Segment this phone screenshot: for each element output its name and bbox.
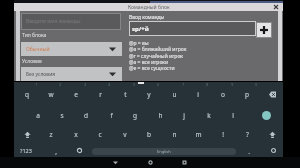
staticText: @e = все сущности bbox=[129, 65, 175, 72]
staticText: 9 bbox=[231, 82, 234, 87]
staticText: Условие bbox=[22, 58, 42, 65]
button[interactable]: Введите имя команды bbox=[21, 13, 121, 30]
button[interactable]: Close bbox=[272, 3, 280, 11]
staticText: j bbox=[183, 111, 185, 120]
staticText: ! bbox=[222, 130, 224, 139]
button[interactable]: sp/+й bbox=[129, 21, 256, 36]
staticText: @a = ближайший игрок bbox=[129, 46, 187, 53]
button[interactable]: t bbox=[114, 85, 136, 103]
button[interactable]: h bbox=[149, 106, 171, 124]
staticText: ?123 bbox=[20, 147, 32, 154]
button[interactable]: n bbox=[163, 125, 185, 143]
button[interactable]: o bbox=[212, 85, 234, 103]
staticText: Командный блок bbox=[128, 4, 170, 11]
staticText: s bbox=[60, 111, 64, 120]
staticText: ? bbox=[246, 130, 249, 139]
staticText: Введите имя команды bbox=[26, 18, 81, 25]
button[interactable]: ?123 bbox=[15, 141, 37, 159]
staticText: m bbox=[195, 130, 202, 139]
staticText: , bbox=[55, 147, 57, 156]
staticText: h bbox=[158, 111, 163, 120]
button[interactable]: New line bbox=[262, 141, 284, 159]
staticText: @a = все игроки bbox=[129, 59, 169, 66]
staticText: @r = случайный игрок bbox=[129, 53, 184, 60]
staticText: z bbox=[49, 130, 53, 139]
button[interactable]: j bbox=[173, 106, 195, 124]
staticText: e bbox=[74, 90, 78, 99]
button[interactable]: l bbox=[222, 106, 244, 124]
staticText: 7 bbox=[182, 82, 185, 87]
button[interactable]: Add command bbox=[256, 22, 272, 38]
staticText: 3 bbox=[84, 82, 87, 87]
staticText: 1 bbox=[35, 82, 38, 87]
staticText: u bbox=[172, 90, 177, 99]
button[interactable]: Backspace bbox=[261, 85, 283, 103]
staticText: i bbox=[197, 90, 199, 99]
button[interactable]: Back bbox=[109, 157, 121, 168]
staticText: English bbox=[157, 149, 171, 154]
staticText: Без условия bbox=[26, 71, 56, 78]
staticText: r bbox=[99, 90, 102, 99]
staticText: d bbox=[84, 111, 88, 120]
staticText: l bbox=[232, 111, 234, 120]
button[interactable]: w bbox=[40, 85, 62, 103]
button[interactable]: f bbox=[100, 106, 122, 124]
staticText: 8 bbox=[206, 82, 209, 87]
staticText: sp/+й bbox=[132, 25, 149, 33]
staticText: n bbox=[172, 130, 177, 139]
staticText: 5 bbox=[133, 82, 136, 87]
button[interactable]: s bbox=[51, 106, 73, 124]
button[interactable]: k bbox=[198, 106, 220, 124]
staticText: o bbox=[221, 90, 225, 99]
button[interactable]: Enter bbox=[257, 106, 275, 124]
button[interactable]: d bbox=[75, 106, 97, 124]
staticText: k bbox=[207, 111, 211, 120]
staticText: f bbox=[110, 111, 113, 120]
staticText: 0 bbox=[255, 82, 258, 87]
staticText: Ввод команды bbox=[129, 14, 165, 21]
button[interactable]: ! bbox=[212, 125, 234, 143]
staticText: c bbox=[98, 130, 102, 139]
button[interactable]: y bbox=[138, 85, 160, 103]
button[interactable]: i bbox=[187, 85, 209, 103]
button[interactable]: Обычный bbox=[21, 42, 122, 56]
staticText: y bbox=[147, 90, 151, 99]
button[interactable]: , bbox=[45, 142, 67, 160]
staticText: v bbox=[123, 130, 127, 139]
button[interactable]: Recents bbox=[178, 157, 190, 168]
staticText: . bbox=[248, 147, 250, 156]
button[interactable]: v bbox=[114, 125, 136, 143]
button[interactable]: . bbox=[238, 142, 260, 160]
button[interactable]: p bbox=[236, 85, 258, 103]
button[interactable]: g bbox=[124, 106, 146, 124]
button[interactable]: c bbox=[89, 125, 111, 143]
button[interactable]: Emoji bbox=[68, 141, 90, 159]
button[interactable]: m bbox=[187, 125, 209, 143]
staticText: t bbox=[124, 90, 127, 99]
button[interactable]: Home bbox=[144, 157, 156, 168]
staticText: p bbox=[245, 90, 249, 99]
staticText: a bbox=[36, 111, 40, 120]
button[interactable]: z bbox=[40, 125, 62, 143]
staticText: b bbox=[147, 130, 151, 139]
button[interactable]: e bbox=[65, 85, 87, 103]
button[interactable]: Shift bbox=[16, 125, 38, 143]
button[interactable]: Shift bbox=[261, 125, 283, 143]
button[interactable]: r bbox=[89, 85, 111, 103]
staticText: x bbox=[74, 130, 78, 139]
button[interactable]: u bbox=[163, 85, 185, 103]
button[interactable]: x bbox=[65, 125, 87, 143]
button[interactable]: ? bbox=[236, 125, 258, 143]
button[interactable]: b bbox=[138, 125, 160, 143]
staticText: q bbox=[25, 90, 29, 99]
staticText: Обычный bbox=[26, 46, 50, 53]
staticText: w bbox=[48, 90, 54, 99]
button[interactable]: English bbox=[92, 148, 236, 155]
staticText: g bbox=[133, 111, 137, 120]
staticText: Тип блока bbox=[22, 32, 47, 39]
button[interactable]: Без условия bbox=[21, 67, 122, 81]
staticText: 2 bbox=[59, 82, 62, 87]
staticText: 4 bbox=[108, 82, 111, 87]
button[interactable]: q bbox=[16, 85, 38, 103]
button[interactable]: a bbox=[27, 106, 49, 124]
